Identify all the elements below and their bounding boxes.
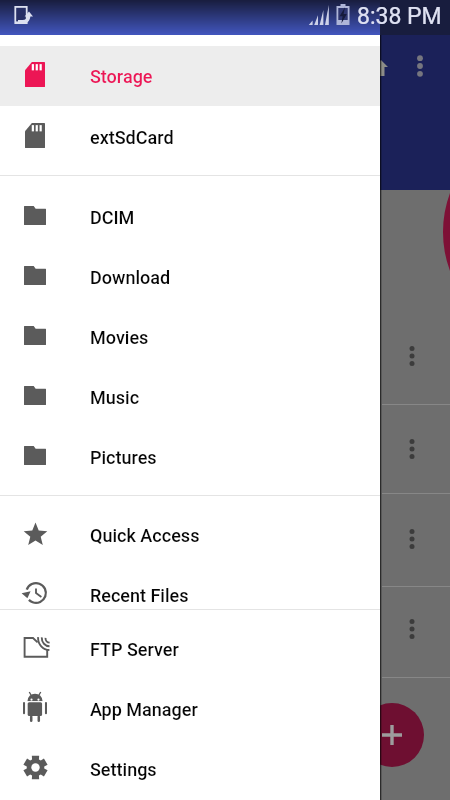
- staticText: Settings: [90, 759, 157, 780]
- staticText: Pictures: [90, 447, 157, 468]
- button[interactable]: Storage: [0, 46, 380, 106]
- button[interactable]: Item options: [396, 340, 428, 372]
- staticText: FTP Server: [90, 639, 179, 660]
- button[interactable]: Movies: [0, 307, 380, 367]
- button[interactable]: More options: [404, 50, 436, 82]
- button[interactable]: Item options: [396, 523, 428, 555]
- staticText: DCIM: [90, 207, 135, 228]
- staticText: Music: [90, 387, 140, 408]
- staticText: Recent Files: [90, 585, 189, 606]
- button[interactable]: extSdCard: [0, 107, 380, 167]
- button[interactable]: DCIM: [0, 187, 380, 247]
- button[interactable]: Download: [0, 247, 380, 307]
- staticText: extSdCard: [90, 127, 174, 148]
- button[interactable]: Item options: [396, 613, 428, 645]
- staticText: Movies: [90, 327, 149, 348]
- button[interactable]: Add: [360, 703, 424, 767]
- staticText: Quick Access: [90, 525, 200, 546]
- staticText: Storage: [90, 66, 153, 87]
- staticText: Download: [90, 267, 171, 288]
- staticText: App Manager: [90, 699, 198, 720]
- button[interactable]: Recent Files: [0, 565, 380, 625]
- button[interactable]: Pictures: [0, 427, 380, 487]
- button[interactable]: Settings: [0, 739, 380, 799]
- button[interactable]: App Manager: [0, 679, 380, 739]
- button[interactable]: FTP Server: [0, 619, 380, 679]
- button[interactable]: Quick Access: [0, 505, 380, 565]
- button[interactable]: Item options: [396, 433, 428, 465]
- staticText: 8:38 PM: [357, 3, 442, 30]
- button[interactable]: Music: [0, 367, 380, 427]
